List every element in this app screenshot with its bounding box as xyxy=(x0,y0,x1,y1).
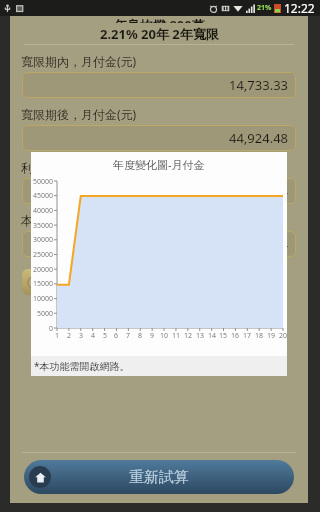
staticText: 14,733.33 xyxy=(229,76,289,94)
staticText: 12:22 xyxy=(284,0,315,16)
staticText: 21% xyxy=(257,3,272,13)
button[interactable]: 1,889,874 xyxy=(22,178,296,204)
staticText: 2 xyxy=(67,331,72,341)
staticText: 13 xyxy=(196,331,205,341)
staticText: 11 xyxy=(172,331,181,341)
staticText: 35000 xyxy=(33,221,54,231)
staticText: 17 xyxy=(243,331,252,341)
staticText: 20 xyxy=(279,331,288,341)
staticText: 9 xyxy=(150,331,155,341)
other: Home xyxy=(29,466,51,488)
staticText: 14 xyxy=(208,331,217,341)
staticText: 2.21% 20年 2年寬限 xyxy=(100,25,219,43)
staticText: 1 xyxy=(55,331,60,341)
staticText: *本功能需開啟網路。 xyxy=(34,359,130,373)
staticText: 0 xyxy=(49,324,54,334)
staticText: 16 xyxy=(231,331,240,341)
staticText: 25000 xyxy=(33,250,54,260)
staticText: 50000 xyxy=(33,177,54,187)
staticText: 1,889,874 xyxy=(229,182,289,200)
staticText: 9,889,874 xyxy=(229,235,289,253)
staticText: 44,924.48 xyxy=(229,129,289,147)
staticText: 重新試算 xyxy=(129,468,189,487)
staticText: 年度變化圖-月付金 xyxy=(49,274,149,290)
staticText: 3 xyxy=(79,331,84,341)
staticText: 15000 xyxy=(33,279,54,289)
staticText: 8 xyxy=(138,331,143,341)
button[interactable]: 年度變化圖-月付金 xyxy=(22,269,200,295)
staticText: 寬限期後，月付金(元) xyxy=(21,106,137,122)
staticText: 10000 xyxy=(33,294,54,304)
button[interactable]: Home xyxy=(24,460,294,494)
staticText: 20000 xyxy=(33,265,54,275)
button[interactable]: 14,733.33 xyxy=(22,72,296,98)
staticText: 10 xyxy=(160,331,169,341)
staticText: 本息(元) xyxy=(21,212,65,228)
staticText: 19 xyxy=(267,331,276,341)
staticText: *試算僅供參考，實際依銀行為準 xyxy=(86,327,232,341)
staticText: 40000 xyxy=(33,206,54,216)
staticText: 45000 xyxy=(33,191,54,201)
staticText: 4 xyxy=(91,331,96,341)
staticText: 6 xyxy=(114,331,119,341)
staticText: 7 xyxy=(126,331,131,341)
staticText: 18 xyxy=(255,331,264,341)
staticText: 5 xyxy=(103,331,108,341)
staticText: 寬限期內，月付金(元) xyxy=(21,53,137,69)
staticText: 15 xyxy=(219,331,228,341)
staticText: 30000 xyxy=(33,235,54,245)
staticText: 12 xyxy=(184,331,193,341)
staticText: 年息均攤 800萬 xyxy=(114,16,205,23)
button[interactable]: 44,924.48 xyxy=(22,125,296,151)
button[interactable]: 9,889,874 xyxy=(22,231,296,257)
staticText: 利息(元) xyxy=(21,159,65,175)
staticText: 5000 xyxy=(37,309,54,319)
staticText: 年度變化圖-月付金 xyxy=(113,157,205,172)
